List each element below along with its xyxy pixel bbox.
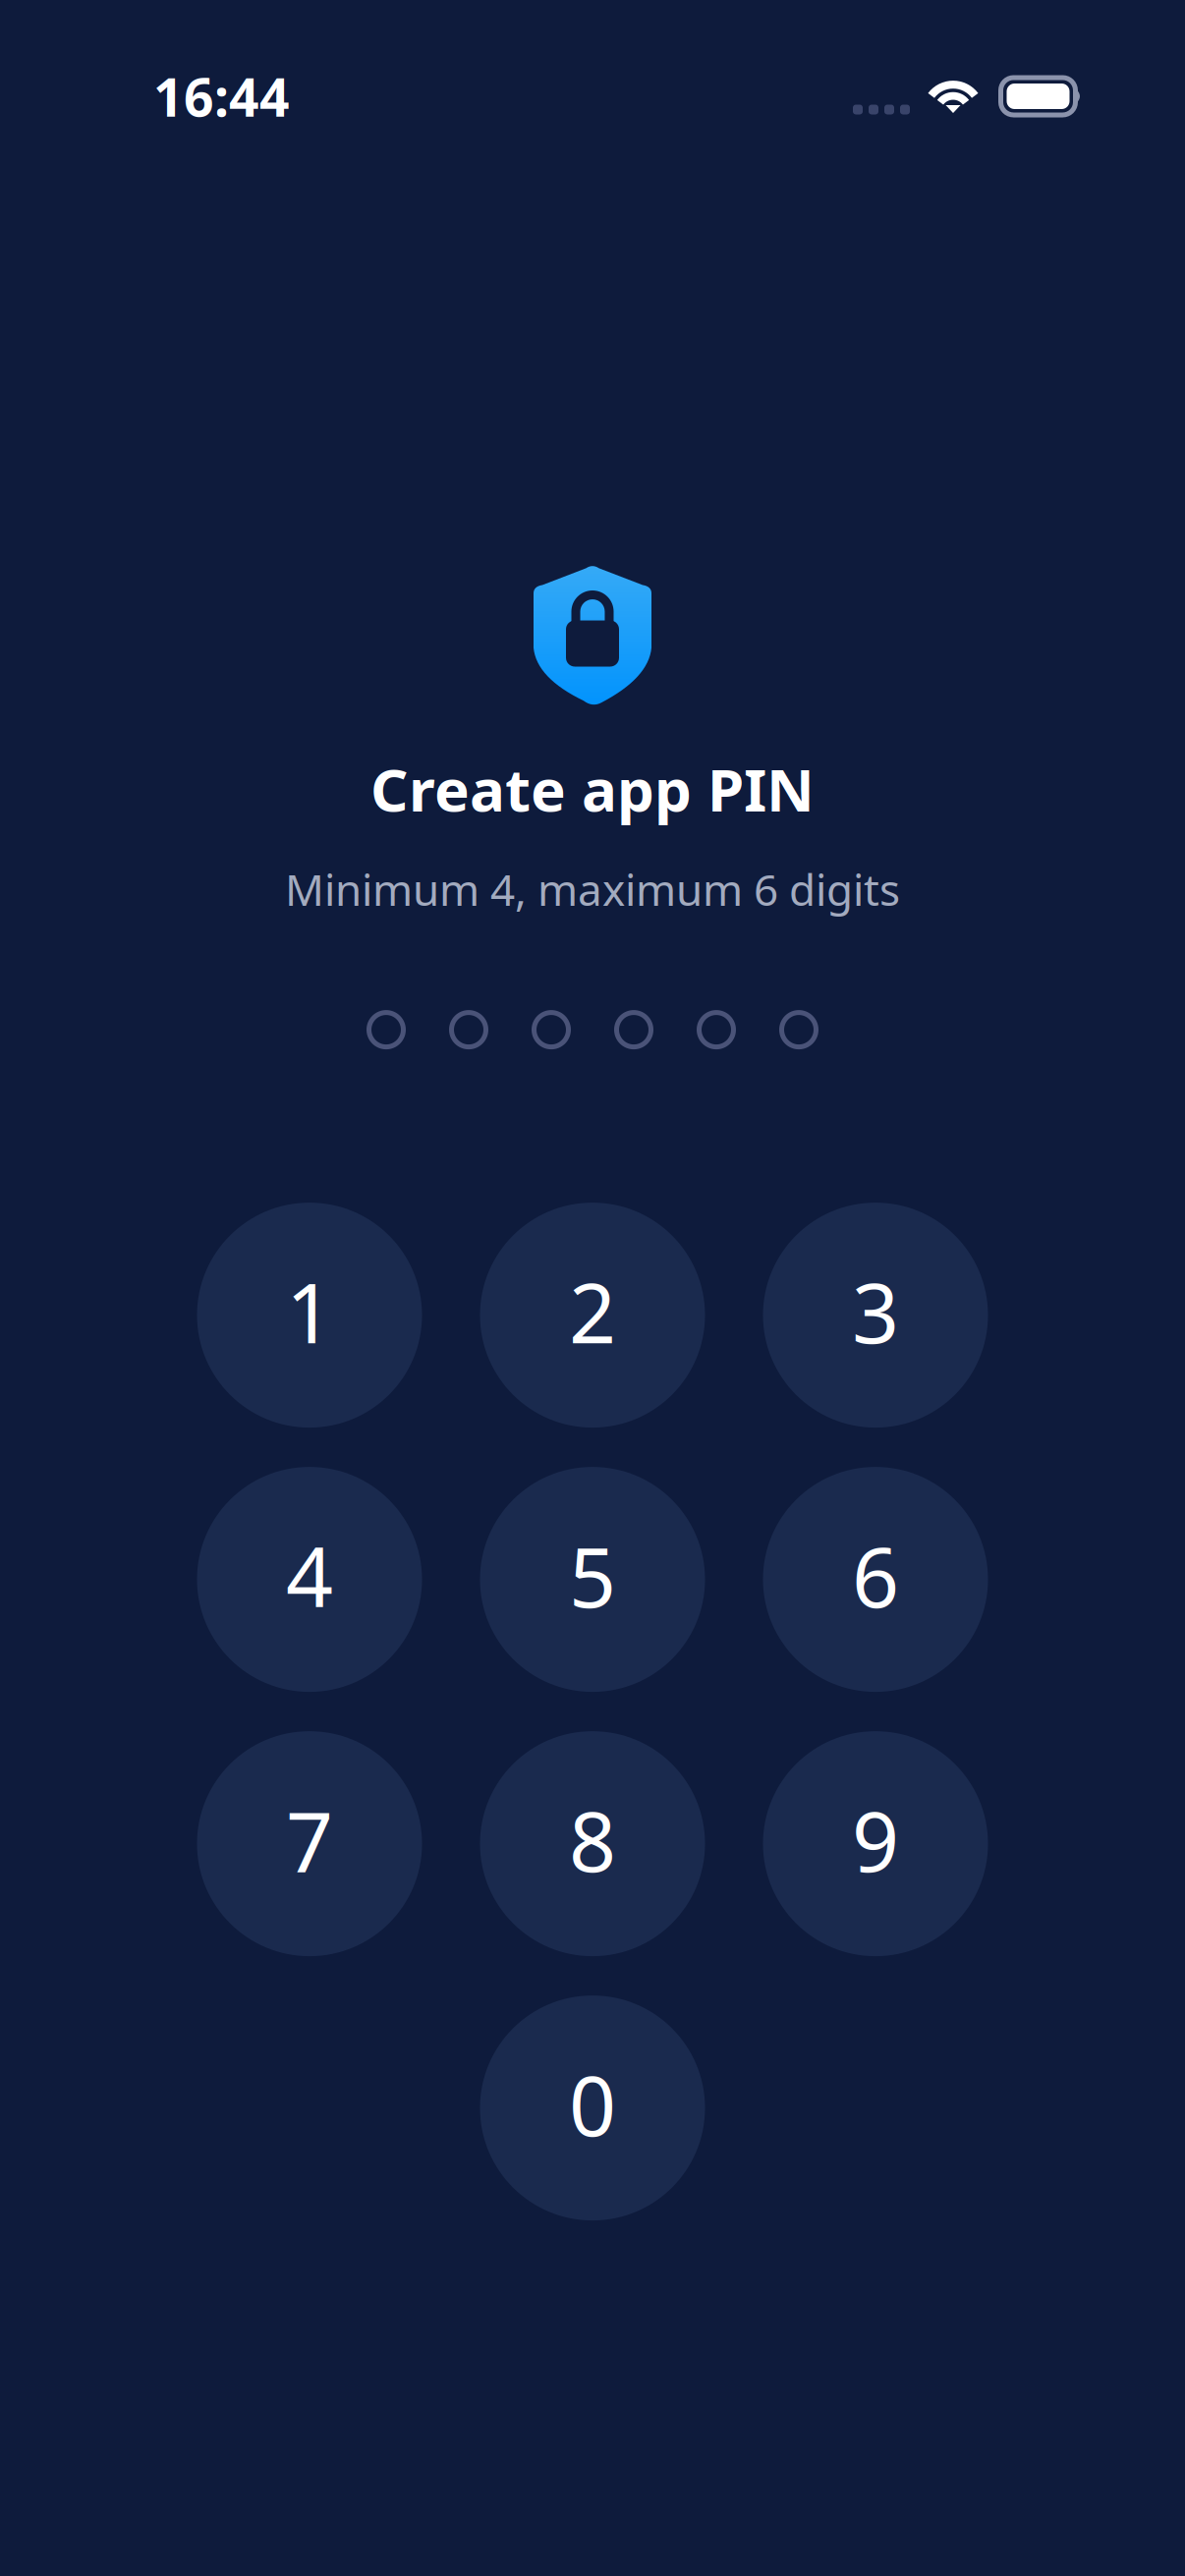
staticText: 3 [852,1256,899,1366]
button[interactable]: 7 [197,1731,422,1956]
staticText: Create app PIN [370,750,815,828]
button[interactable]: 3 [763,1203,988,1428]
staticText: 6 [852,1521,899,1630]
staticText: 9 [852,1785,899,1894]
staticText: Minimum 4, maximum 6 digits [285,860,900,918]
staticText: 5 [569,1521,616,1630]
button[interactable]: 2 [480,1203,705,1428]
button[interactable]: 9 [763,1731,988,1956]
staticText: 4 [286,1521,333,1630]
staticText: 0 [569,2049,616,2159]
button[interactable]: 5 [480,1467,705,1692]
staticText: 7 [286,1785,333,1894]
staticText: 8 [569,1785,616,1894]
staticText: 16:44 [153,62,290,131]
button[interactable]: 6 [763,1467,988,1692]
button[interactable]: 8 [480,1731,705,1956]
button[interactable]: 4 [197,1467,422,1692]
button[interactable]: 1 [197,1203,422,1428]
staticText: 1 [286,1256,333,1366]
staticText: 2 [569,1256,616,1366]
button[interactable]: 0 [480,1995,705,2220]
